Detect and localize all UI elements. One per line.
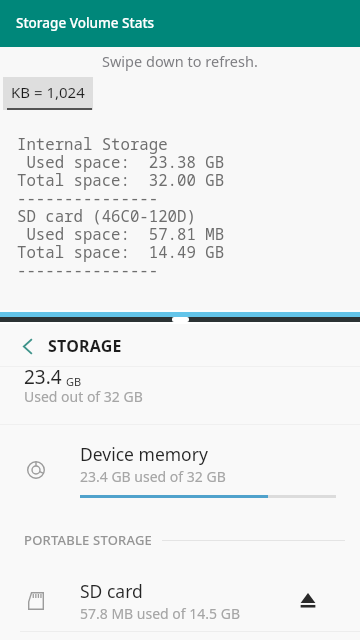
button[interactable]: Back <box>0 329 360 363</box>
button[interactable]: Eject <box>291 583 324 616</box>
staticText: Device memory <box>80 442 208 466</box>
staticText: PORTABLE STORAGE <box>24 531 153 549</box>
staticText: Internal Storage Used space: 23.38 GB To… <box>17 133 225 281</box>
staticText: KB = 1,024 <box>11 82 85 102</box>
button[interactable]: Device memory <box>0 425 360 493</box>
staticText: 23.4 <box>24 364 62 390</box>
staticText: STORAGE <box>48 335 122 357</box>
staticText: SD card <box>80 579 143 603</box>
staticText: 23.4 GB used of 32 GB <box>80 467 226 486</box>
staticText: Swipe down to refresh. <box>102 51 258 71</box>
staticText: Storage Volume Stats <box>16 14 155 32</box>
button[interactable]: KB = 1,024 <box>3 77 93 110</box>
button[interactable]: SD card <box>0 569 360 631</box>
other: Back <box>23 339 32 354</box>
staticText: GB <box>66 374 82 389</box>
staticText: 57.8 MB used of 14.5 GB <box>80 604 240 623</box>
staticText: Used out of 32 GB <box>24 387 143 406</box>
button[interactable]: Storage Volume Stats <box>0 0 360 47</box>
